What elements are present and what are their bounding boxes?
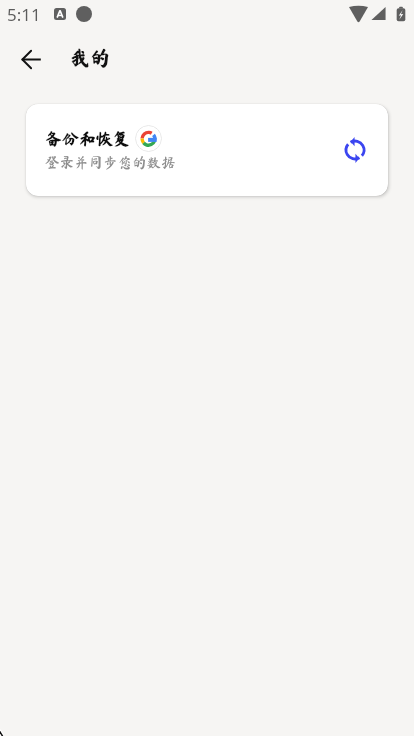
staticText: 我的: [70, 47, 110, 67]
staticText: 备份和恢复: [45, 130, 130, 147]
button[interactable]: Sync: [335, 130, 375, 170]
staticText: 5:11: [7, 3, 41, 26]
staticText: 登录并同步您的数据: [45, 155, 176, 170]
button[interactable]: 备份和恢复: [26, 104, 388, 196]
button[interactable]: Back: [8, 36, 54, 82]
